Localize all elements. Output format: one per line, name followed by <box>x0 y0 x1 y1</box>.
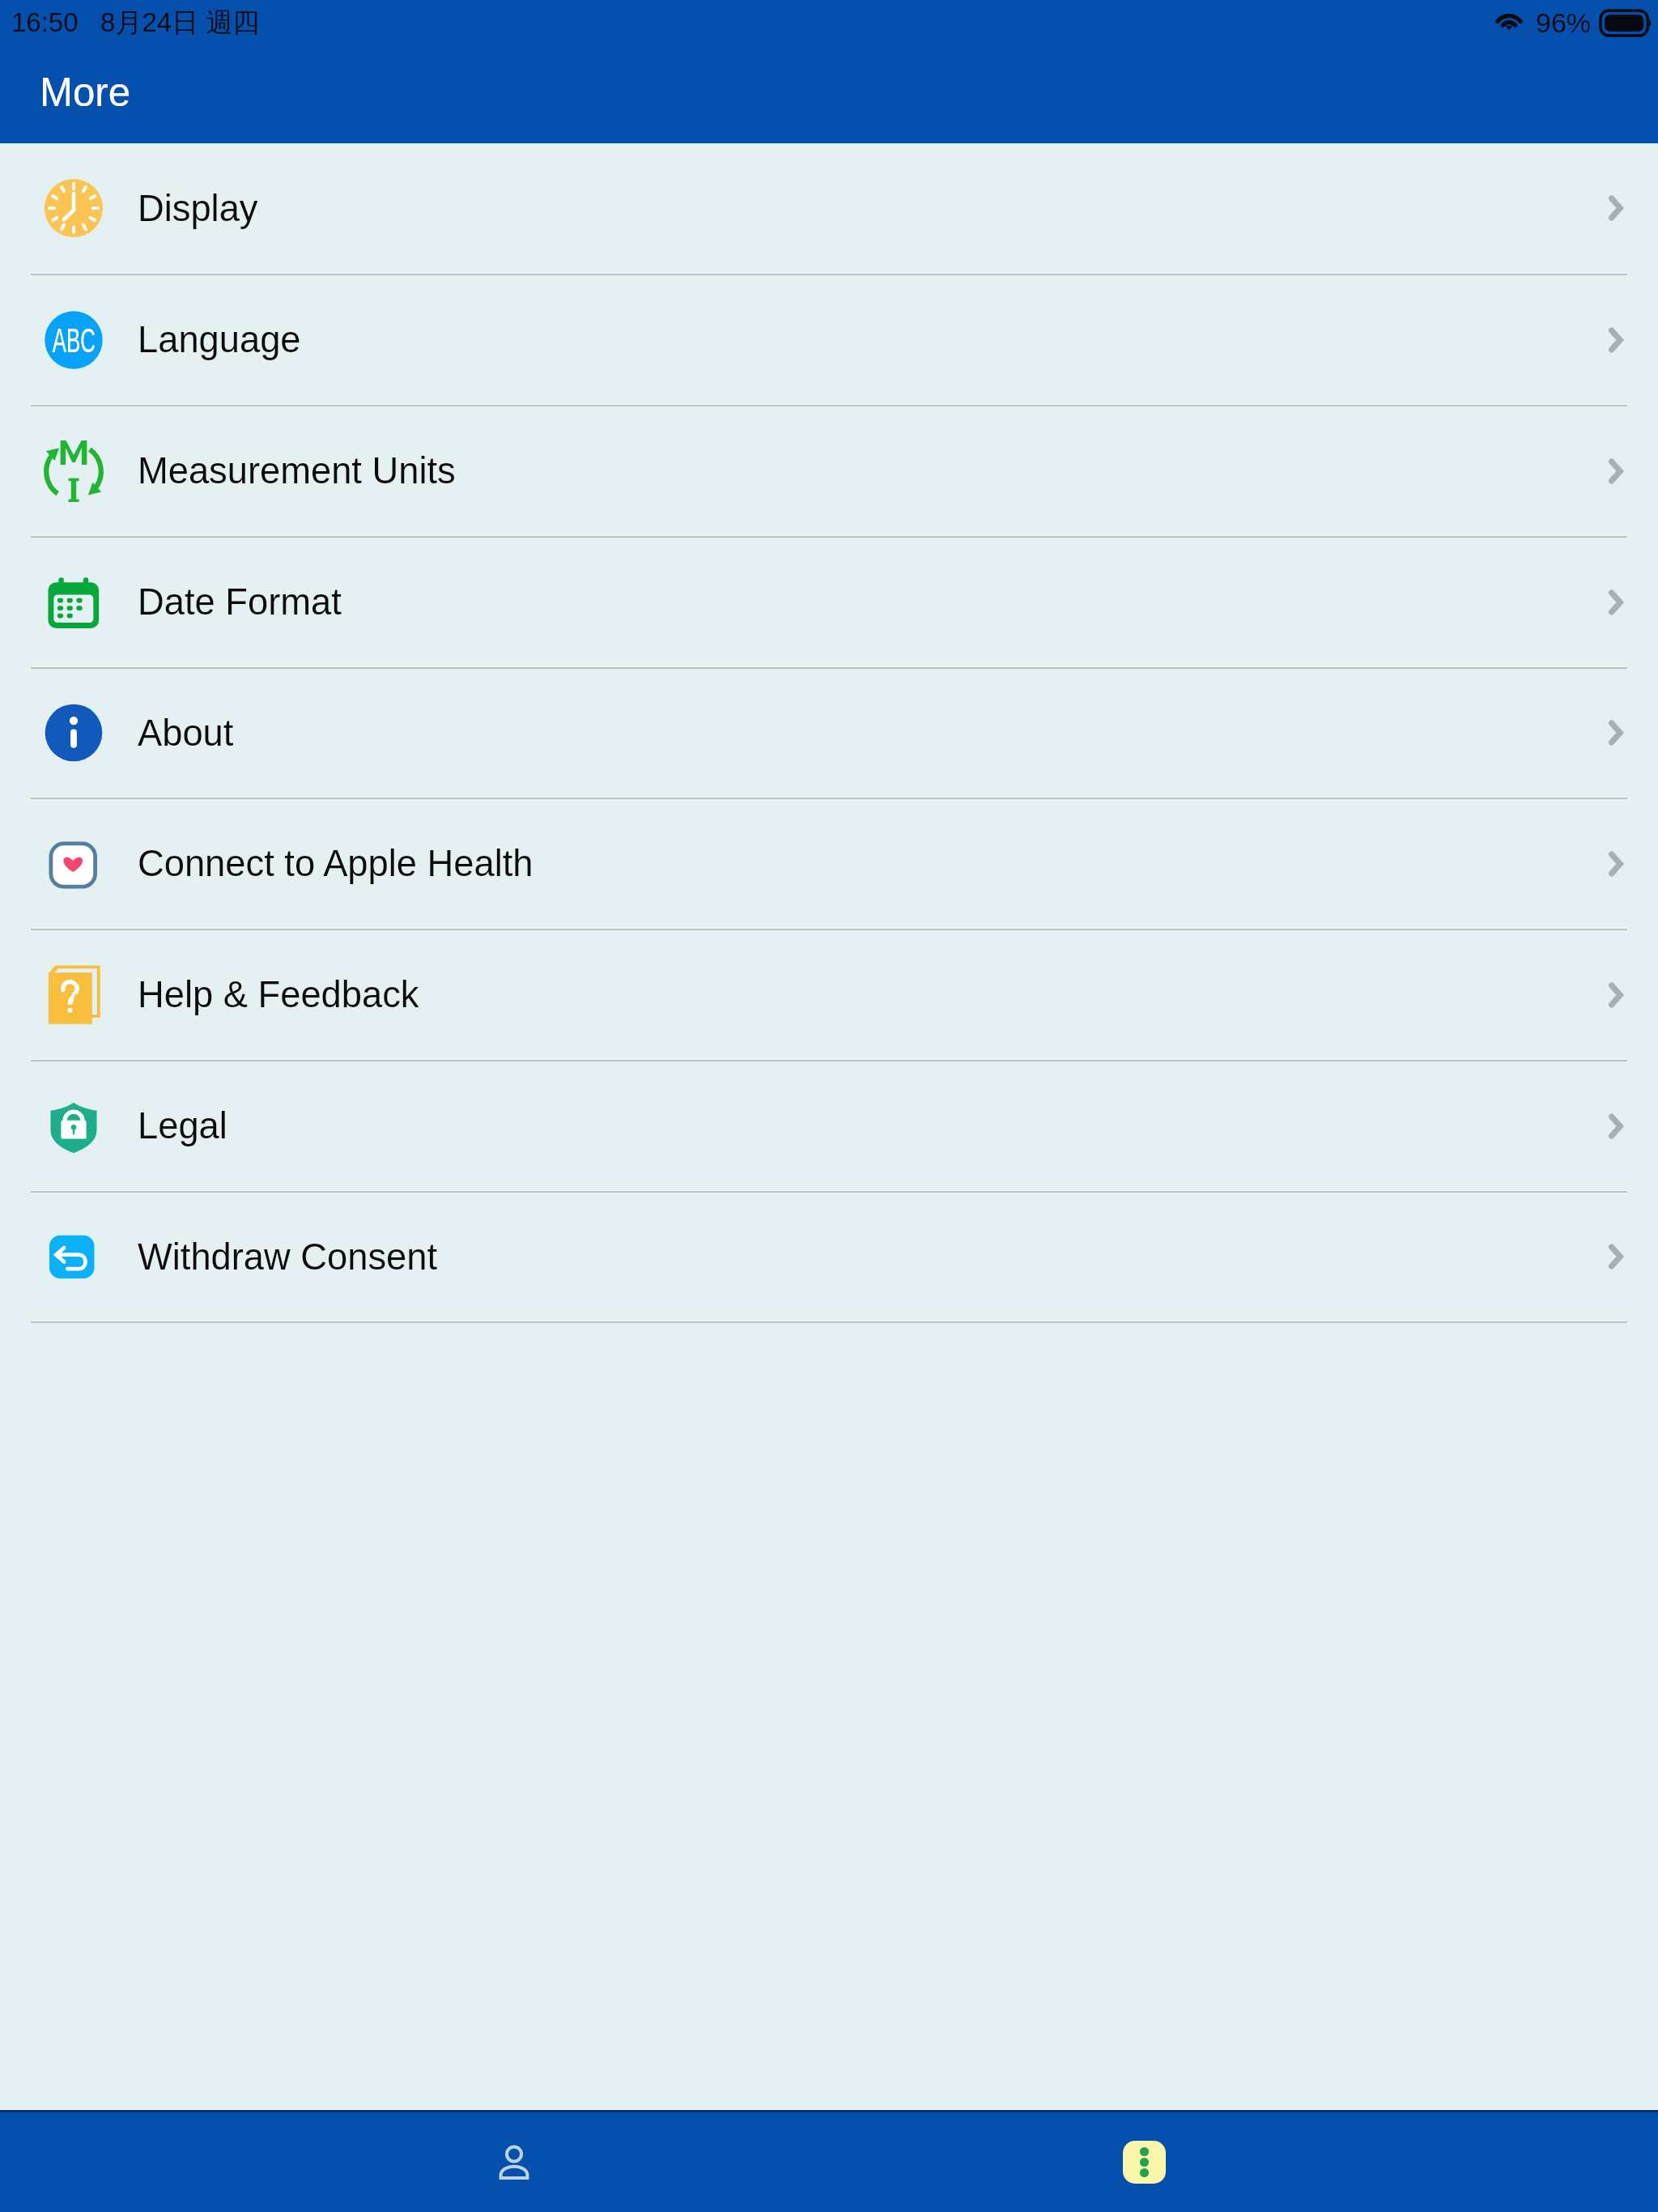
button[interactable]: ABC <box>0 275 1658 406</box>
button[interactable]: Withdraw Consent <box>0 1193 1658 1323</box>
button[interactable]: Profile <box>198 2112 829 2212</box>
staticText: About <box>138 713 234 754</box>
button[interactable]: Measurement Units <box>0 406 1658 538</box>
staticText: Display <box>138 188 258 229</box>
staticText: Language <box>138 319 301 360</box>
button[interactable]: Display <box>0 143 1658 275</box>
staticText: 96% <box>1536 7 1592 38</box>
staticText: Measurement Units <box>138 450 456 491</box>
staticText: Legal <box>138 1105 227 1146</box>
staticText: 16:50 8月24日 週四 <box>11 6 260 40</box>
button[interactable]: Legal <box>0 1061 1658 1193</box>
staticText: Date Format <box>138 581 342 623</box>
staticText: ABC <box>52 321 96 359</box>
staticText: More <box>40 70 131 114</box>
button[interactable]: About <box>0 669 1658 799</box>
button[interactable]: Date Format <box>0 538 1658 669</box>
staticText: Withdraw Consent <box>138 1236 438 1278</box>
staticText: Help & Feedback <box>138 974 419 1015</box>
button[interactable]: Connect to Apple Health <box>0 799 1658 930</box>
button[interactable]: More <box>829 2112 1460 2212</box>
staticText: Connect to Apple Health <box>138 843 534 884</box>
button[interactable]: Help & Feedback <box>0 930 1658 1061</box>
